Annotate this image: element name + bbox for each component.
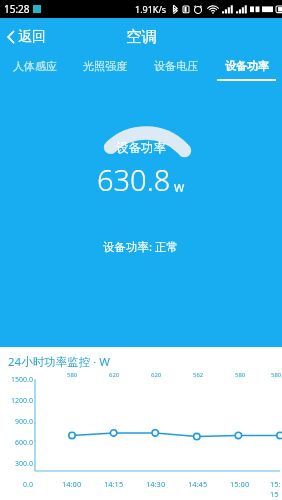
staticText: 620 (109, 371, 120, 379)
staticText: 580 (235, 371, 246, 379)
staticText: 人体感应 (13, 59, 57, 73)
button[interactable]: 光照强度 (70, 55, 140, 88)
staticText: 300.0 (15, 459, 33, 469)
staticText: 14:00 (62, 479, 82, 489)
staticText: 设备功率 (225, 59, 269, 73)
staticText: 630.8 (97, 160, 171, 199)
staticText: 620 (151, 371, 162, 379)
button[interactable]: Back (0, 21, 58, 53)
button[interactable]: 人体感应 (0, 55, 70, 88)
staticText: 空调 (126, 27, 157, 47)
staticText: 24小时功率监控 · W (8, 354, 110, 370)
staticText: 返回 (18, 28, 46, 46)
button[interactable]: 设备电压 (140, 55, 211, 88)
staticText: 15:00 (230, 479, 250, 489)
staticText: 1200.0 (11, 396, 33, 406)
staticText: 0.0 (23, 480, 33, 490)
button[interactable]: 设备功率 (211, 55, 282, 88)
staticText: 580 (271, 371, 282, 379)
staticText: 15:15 (270, 479, 282, 499)
staticText: 设备功率: 正常 (103, 239, 179, 255)
staticText: 14:30 (146, 479, 166, 489)
staticText: 设备电压 (154, 59, 198, 73)
staticText: 14:15 (104, 479, 124, 489)
staticText: 15:28 (4, 2, 30, 16)
staticText: W (174, 180, 185, 195)
staticText: 580 (67, 371, 78, 379)
staticText: 1500.0 (11, 375, 33, 385)
staticText: 562 (193, 371, 204, 379)
staticText: 600.0 (15, 438, 33, 448)
other: Back (7, 30, 15, 44)
staticText: 设备功率 (116, 140, 166, 156)
staticText: 14:45 (188, 479, 208, 489)
staticText: 900.0 (15, 417, 33, 427)
staticText: 光照强度 (83, 59, 127, 73)
staticText: 1.91K/s (135, 3, 167, 15)
